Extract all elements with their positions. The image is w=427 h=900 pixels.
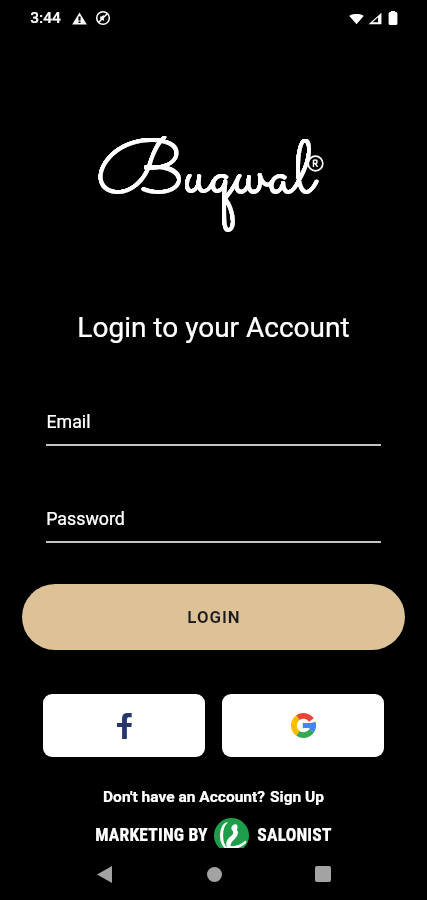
staticText: Buqwal	[97, 121, 315, 232]
staticText: Email	[46, 411, 91, 432]
staticText: 3:44	[30, 9, 61, 27]
button[interactable]: Home	[194, 854, 234, 894]
staticText: Don't have an Account?	[103, 788, 265, 806]
button[interactable]: Recent apps	[303, 854, 343, 894]
button[interactable]: Sign Up	[270, 788, 324, 806]
button[interactable]: Password	[46, 508, 381, 543]
button[interactable]: LOGIN	[22, 584, 405, 650]
button[interactable]: Sign in with Facebook	[43, 694, 205, 757]
staticText: Buqwal	[96, 122, 314, 233]
staticText: Buqwal	[96, 121, 314, 232]
button[interactable]: Back	[84, 854, 124, 894]
staticText: Sign Up	[270, 788, 324, 806]
staticText: SALONIST	[257, 825, 332, 846]
staticText: Buqwal	[96, 121, 314, 232]
staticText: MARKETING BY	[95, 825, 208, 846]
staticText: Buqwal	[96, 121, 314, 232]
staticText: LOGIN	[187, 607, 241, 627]
staticText: Login to your Account	[77, 311, 350, 344]
button[interactable]: Sign in with Google	[222, 694, 384, 757]
button[interactable]: Email	[46, 411, 381, 446]
staticText: Password	[46, 508, 125, 529]
